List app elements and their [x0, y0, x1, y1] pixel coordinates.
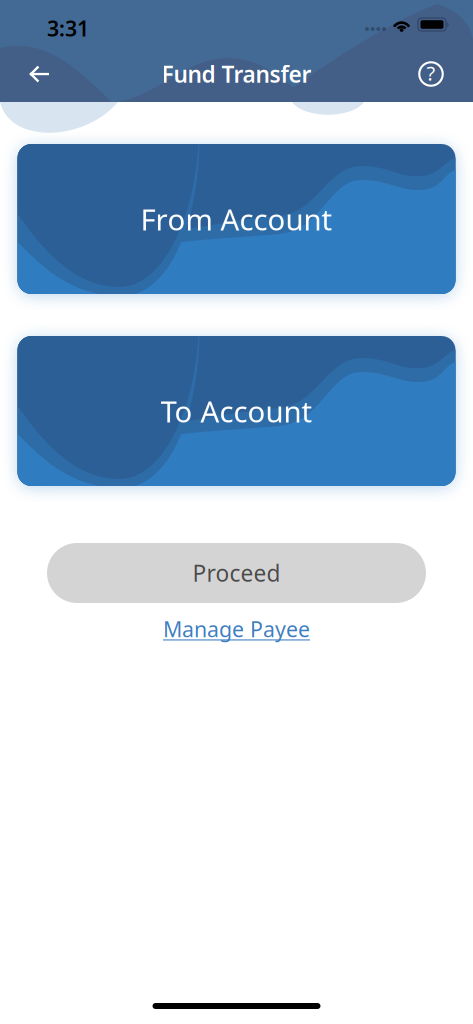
- button[interactable]: Back: [14, 46, 66, 102]
- button[interactable]: From Account: [17, 144, 455, 294]
- button[interactable]: To Account: [17, 336, 455, 486]
- staticText: Proceed: [192, 558, 280, 588]
- button[interactable]: Proceed: [47, 543, 426, 603]
- staticText: 3:31: [47, 14, 89, 42]
- staticText: To Account: [160, 391, 312, 430]
- button[interactable]: Manage Payee: [163, 615, 310, 643]
- staticText: ?: [426, 60, 435, 86]
- staticText: Fund Transfer: [161, 59, 311, 89]
- staticText: From Account: [140, 199, 332, 238]
- staticText: Manage Payee: [163, 615, 310, 643]
- button[interactable]: Help: [405, 46, 457, 102]
